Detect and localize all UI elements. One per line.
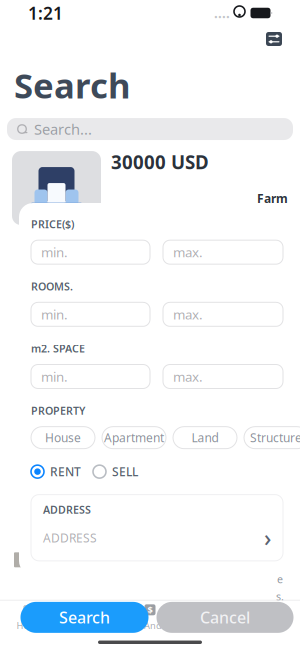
- staticText: ROOMS.: [31, 279, 73, 293]
- button[interactable]: SELL: [93, 464, 138, 480]
- staticText: m2. SPACE: [31, 341, 85, 355]
- button[interactable]: $: [120, 600, 180, 634]
- staticText: Apartment: [104, 430, 164, 446]
- staticText: Home: [16, 619, 43, 632]
- staticText: e: [277, 572, 283, 586]
- staticText: Cancel: [200, 607, 250, 628]
- staticText: House: [45, 430, 81, 446]
- staticText: ADDRESS: [43, 530, 97, 546]
- button[interactable]: min.: [31, 302, 150, 326]
- staticText: 30000 USD: [111, 150, 209, 174]
- button[interactable]: min.: [31, 240, 150, 264]
- staticText: RENT: [50, 464, 81, 480]
- staticText: Search...: [34, 119, 92, 139]
- button[interactable]: max.: [163, 240, 283, 264]
- staticText: PRICE($): [31, 217, 74, 231]
- staticText: Search: [59, 607, 110, 628]
- button[interactable]: ADDRESS: [31, 495, 283, 561]
- staticText: min.: [41, 305, 68, 323]
- button[interactable]: Real Estates: [60, 600, 120, 634]
- staticText: SELL: [112, 464, 138, 480]
- button[interactable]: Search: [180, 600, 240, 634]
- staticText: Search: [14, 62, 131, 108]
- staticText: 1:21: [28, 1, 63, 24]
- button[interactable]: Home: [0, 600, 60, 634]
- button[interactable]: Search: [20, 602, 148, 633]
- button[interactable]: Search...: [7, 118, 293, 140]
- staticText: max.: [173, 305, 203, 323]
- staticText: ....: [214, 4, 230, 22]
- button[interactable]: Filters: [260, 26, 288, 52]
- staticText: s.: [276, 589, 284, 603]
- button[interactable]: Settings: [240, 600, 300, 634]
- button[interactable]: min.: [31, 364, 150, 388]
- staticText: min.: [41, 368, 68, 385]
- button[interactable]: Structure: [244, 427, 300, 449]
- staticText: min.: [41, 243, 68, 261]
- staticText: ›: [264, 523, 271, 553]
- staticText: max.: [173, 368, 203, 385]
- staticText: $: [147, 604, 152, 616]
- staticText: max.: [173, 243, 203, 261]
- button[interactable]: House: [31, 427, 95, 449]
- staticText: Settings: [253, 619, 287, 632]
- button[interactable]: max.: [163, 302, 283, 326]
- staticText: PROPERTY: [31, 403, 85, 418]
- button[interactable]: max.: [163, 364, 283, 388]
- staticText: Rent And Sell: [122, 619, 178, 632]
- button[interactable]: Land: [173, 427, 237, 449]
- button[interactable]: RENT: [31, 464, 81, 480]
- staticText: Farm: [257, 190, 288, 206]
- staticText: Real Estates: [65, 619, 114, 632]
- staticText: Land: [191, 430, 218, 446]
- staticText: Search: [195, 619, 225, 632]
- button[interactable]: Cancel: [156, 602, 293, 633]
- button[interactable]: Apartment: [102, 427, 166, 449]
- staticText: Structure: [250, 430, 300, 446]
- staticText: ADDRESS: [43, 503, 91, 517]
